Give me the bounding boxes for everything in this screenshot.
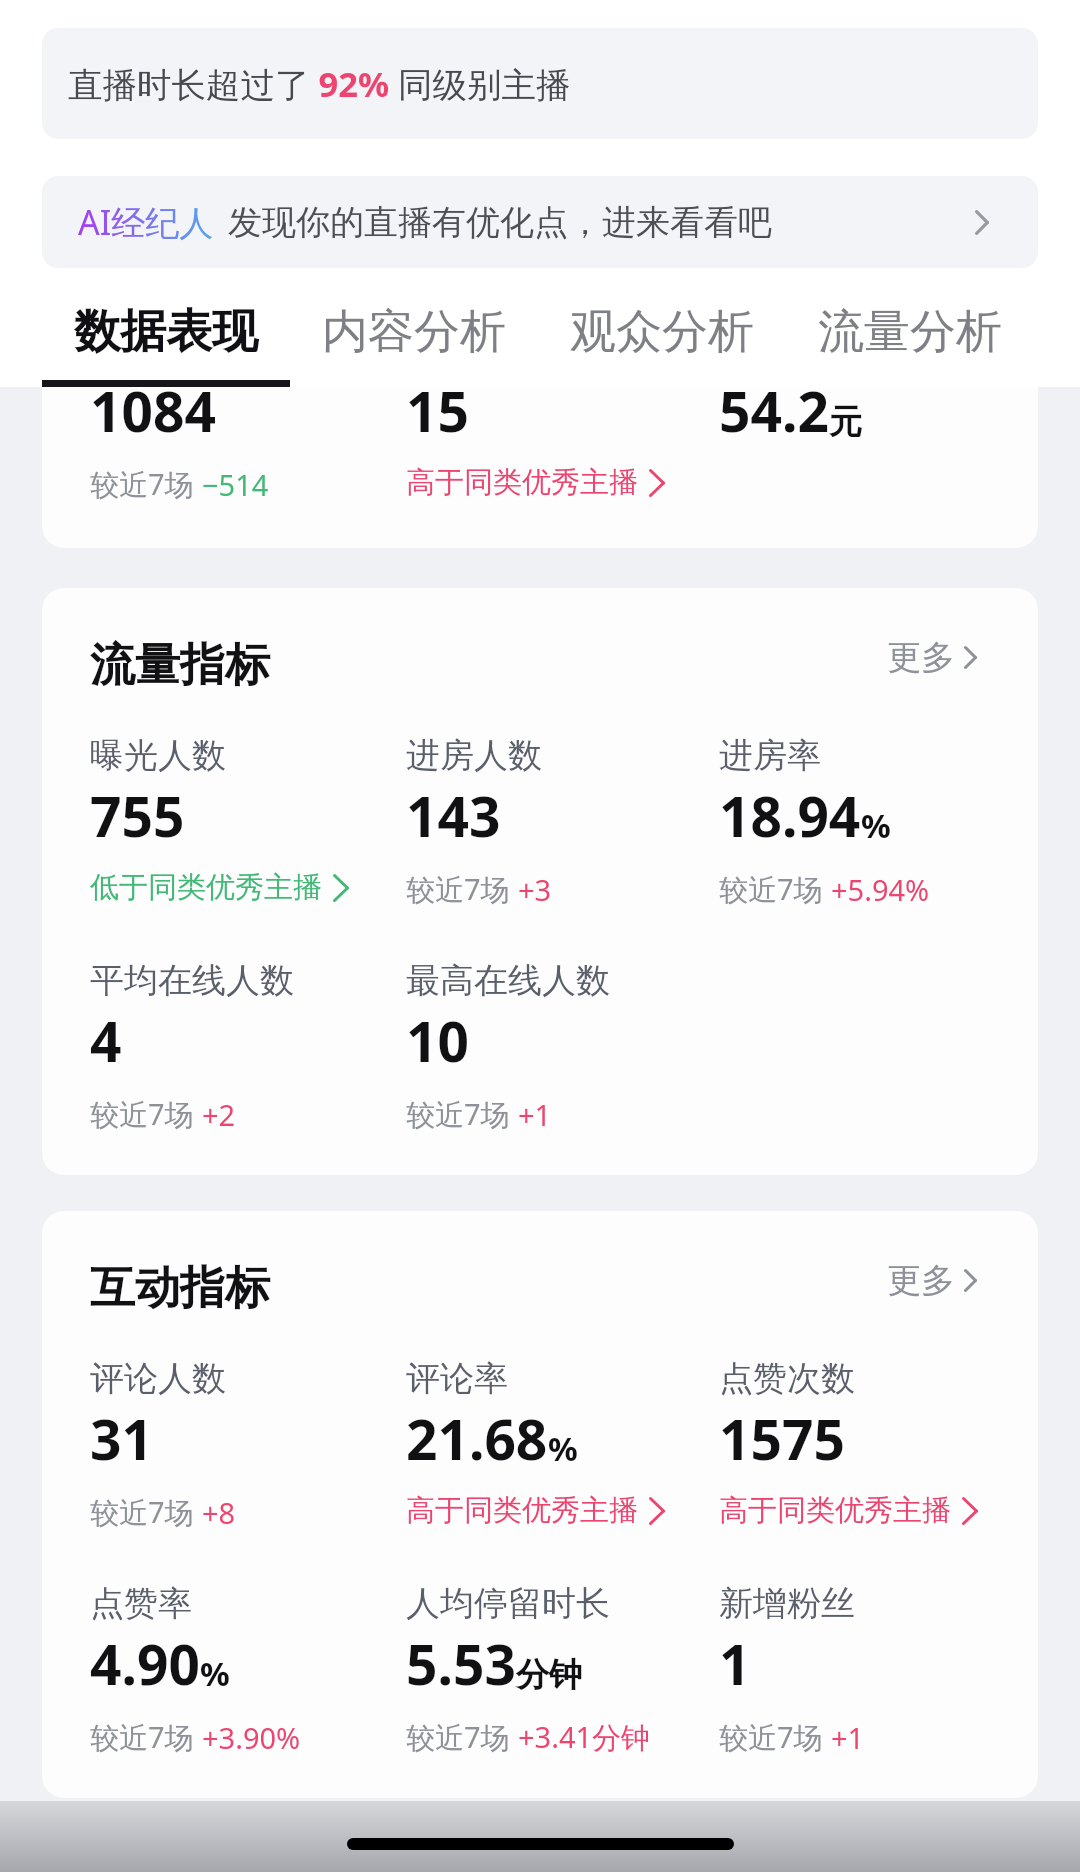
staticText: 较近7场 <box>719 1717 823 1757</box>
staticText: AI经纪人 <box>78 199 214 245</box>
staticText: 流量指标 <box>90 637 270 694</box>
staticText: 点赞次数 <box>719 1357 855 1400</box>
button[interactable]: 更多 <box>887 1259 990 1302</box>
staticText: 高于同类优秀主播 <box>719 1492 951 1529</box>
staticText: 1084 <box>90 387 216 448</box>
button[interactable]: 点赞率 <box>90 1582 406 1757</box>
staticText: +3.41分钟 <box>518 1717 651 1757</box>
button[interactable]: 新增粉丝 <box>719 1582 990 1757</box>
button[interactable]: 直播时长超过了 92% 同级别主播 <box>42 28 1038 139</box>
staticText: % <box>548 1426 578 1471</box>
staticText: 内容分析 <box>322 303 506 361</box>
staticText: 进房率 <box>719 734 821 777</box>
staticText: 较近7场 <box>90 464 194 504</box>
staticText: +8 <box>202 1493 236 1532</box>
staticText: 人均停留时长 <box>406 1582 610 1625</box>
button[interactable]: 点赞次数 <box>719 1357 990 1529</box>
staticText: 较近7场 <box>90 1717 194 1757</box>
staticText: 进房人数 <box>406 734 542 777</box>
staticText: 最高在线人数 <box>406 959 610 1002</box>
button[interactable]: 平均在线人数 <box>90 959 406 1134</box>
staticText: 低于同类优秀主播 <box>90 869 322 906</box>
button[interactable]: 1084 <box>90 387 406 504</box>
staticText: 互动指标 <box>90 1260 270 1317</box>
staticText: 评论率 <box>406 1357 508 1400</box>
staticText: 5.53 <box>406 1626 516 1701</box>
staticText: +1 <box>831 1718 865 1757</box>
staticText: 21.68 <box>406 1401 548 1476</box>
staticText: 观众分析 <box>570 303 754 361</box>
button[interactable]: 曝光人数 <box>90 734 406 906</box>
staticText: 更多 <box>887 636 955 679</box>
button[interactable]: 更多 <box>887 636 990 679</box>
button[interactable]: AI经纪人 <box>42 176 1038 268</box>
staticText: 分钟 <box>516 1654 582 1696</box>
staticText: 18.94 <box>719 778 861 853</box>
staticText: 直播时长超过了 92% 同级别主播 <box>68 60 571 107</box>
staticText: 曝光人数 <box>90 734 226 777</box>
button[interactable]: 流量分析 <box>786 268 1034 387</box>
staticText: 755 <box>90 778 185 853</box>
staticText: 143 <box>406 778 501 853</box>
staticText: +3 <box>518 870 552 909</box>
button[interactable]: 观众分析 <box>538 268 786 387</box>
staticText: 54.2 <box>719 387 829 448</box>
staticText: 31 <box>90 1401 153 1476</box>
button[interactable]: 最高在线人数 <box>406 959 719 1134</box>
button[interactable]: 54.2 <box>719 387 1038 503</box>
staticText: 1575 <box>719 1401 845 1476</box>
other: 查看 AI 经纪人建议 <box>975 210 989 235</box>
staticText: 较近7场 <box>406 1717 510 1757</box>
staticText: 新增粉丝 <box>719 1582 855 1625</box>
staticText: 点赞率 <box>90 1582 192 1625</box>
staticText: +2 <box>202 1095 236 1134</box>
staticText: 4 <box>90 1003 122 1078</box>
staticText: +1 <box>518 1095 552 1134</box>
staticText: 更多 <box>887 1259 955 1302</box>
staticText: 15 <box>406 387 469 448</box>
button[interactable]: 内容分析 <box>290 268 538 387</box>
staticText: % <box>200 1651 230 1696</box>
staticText: 1 <box>719 1626 751 1701</box>
staticText: 平均在线人数 <box>90 959 294 1002</box>
staticText: % <box>861 803 891 848</box>
staticText: 较近7场 <box>719 869 823 909</box>
button[interactable]: 评论率 <box>406 1357 719 1529</box>
button[interactable]: 评论人数 <box>90 1357 406 1532</box>
staticText: 元 <box>829 401 862 443</box>
button[interactable]: 进房率 <box>719 734 990 909</box>
staticText: 发现你的直播有优化点，进来看看吧 <box>228 201 772 244</box>
staticText: −514 <box>202 465 269 504</box>
staticText: 评论人数 <box>90 1357 226 1400</box>
staticText: 较近7场 <box>406 869 510 909</box>
button[interactable]: 人均停留时长 <box>406 1582 719 1757</box>
staticText: +5.94% <box>831 870 930 909</box>
staticText: 较近7场 <box>90 1094 194 1134</box>
staticText: 数据表现 <box>74 303 258 361</box>
staticText: 高于同类优秀主播 <box>406 1492 638 1529</box>
staticText: 高于同类优秀主播 <box>406 464 638 501</box>
staticText: 较近7场 <box>90 1492 194 1532</box>
button[interactable]: 进房人数 <box>406 734 719 909</box>
button[interactable]: 数据表现 <box>42 268 290 387</box>
staticText: 流量分析 <box>818 303 1002 361</box>
staticText: 较近7场 <box>406 1094 510 1134</box>
staticText: 10 <box>406 1003 469 1078</box>
button[interactable]: 15 <box>406 387 719 501</box>
staticText: 4.90 <box>90 1626 200 1701</box>
staticText: +3.90% <box>202 1718 301 1757</box>
